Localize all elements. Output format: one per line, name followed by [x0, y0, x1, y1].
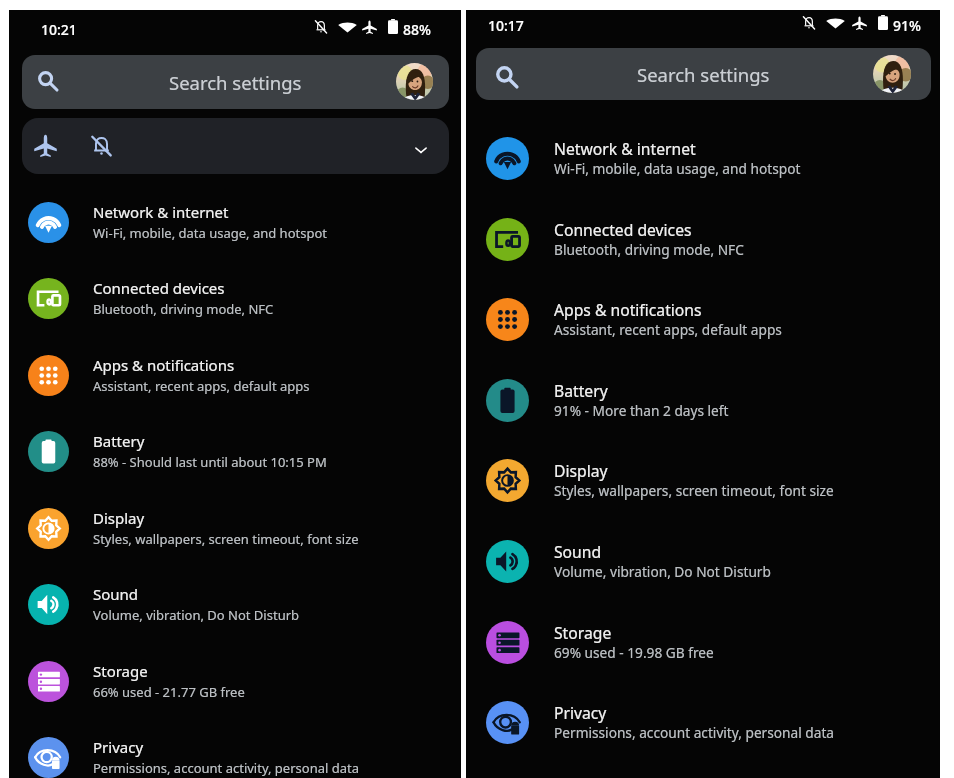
staticText: Bluetooth, driving mode, NFC: [93, 300, 274, 318]
staticText: Assistant, recent apps, default apps: [554, 320, 782, 339]
button[interactable]: Battery: [9, 413, 461, 490]
button[interactable]: Apps & notifications: [9, 337, 461, 414]
staticText: Search settings: [169, 70, 302, 95]
button[interactable]: Connected devices: [466, 199, 940, 280]
staticText: Permissions, account activity, personal …: [93, 759, 359, 777]
button[interactable]: Storage: [9, 643, 461, 720]
staticText: Display: [554, 460, 608, 481]
staticText: Privacy: [554, 702, 607, 723]
button[interactable]: Battery: [466, 360, 940, 441]
staticText: Storage: [554, 622, 612, 643]
staticText: 91% - More than 2 days left: [554, 401, 729, 420]
staticText: Bluetooth, driving mode, NFC: [554, 240, 744, 259]
other: Search: [38, 71, 58, 91]
button[interactable]: Search: [476, 48, 931, 100]
button[interactable]: Display: [466, 440, 940, 521]
button[interactable]: Apps & notifications: [466, 279, 940, 360]
staticText: Sound: [554, 541, 602, 562]
staticText: Volume, vibration, Do Not Disturb: [554, 562, 771, 581]
button[interactable]: Privacy: [9, 719, 461, 778]
other: Airplane mode: [34, 134, 57, 157]
staticText: 88%: [403, 20, 431, 39]
staticText: Wi-Fi, mobile, data usage, and hotspot: [93, 224, 327, 242]
button[interactable]: Airplane mode: [22, 118, 449, 174]
staticText: 69% used - 19.98 GB free: [554, 643, 714, 662]
staticText: Network & internet: [93, 202, 229, 222]
staticText: Search settings: [637, 62, 770, 87]
button[interactable]: Display: [9, 490, 461, 567]
staticText: Wi-Fi, mobile, data usage, and hotspot: [554, 159, 801, 178]
staticText: Battery: [93, 431, 145, 451]
staticText: Display: [93, 508, 145, 528]
staticText: Battery: [554, 380, 608, 401]
button[interactable]: Network & internet: [466, 118, 940, 199]
staticText: 10:17: [488, 16, 524, 35]
staticText: Privacy: [93, 737, 144, 757]
staticText: 66% used - 21.77 GB free: [93, 683, 245, 701]
other: Mute notifications: [90, 134, 113, 157]
staticText: Connected devices: [554, 219, 692, 240]
staticText: Connected devices: [93, 278, 225, 298]
staticText: Apps & notifications: [554, 299, 702, 320]
staticText: Styles, wallpapers, screen timeout, font…: [93, 530, 359, 548]
other: Search: [496, 66, 518, 88]
staticText: Sound: [93, 584, 139, 604]
other: Expand: [413, 142, 429, 158]
staticText: 91%: [893, 16, 921, 35]
staticText: Volume, vibration, Do Not Disturb: [93, 606, 300, 624]
staticText: Apps & notifications: [93, 355, 235, 375]
staticText: Assistant, recent apps, default apps: [93, 377, 310, 395]
staticText: Permissions, account activity, personal …: [554, 723, 835, 742]
button[interactable]: Sound: [466, 521, 940, 602]
button[interactable]: Sound: [9, 566, 461, 643]
staticText: Network & internet: [554, 138, 696, 159]
button[interactable]: Search: [22, 55, 449, 109]
button[interactable]: Privacy: [466, 682, 940, 763]
staticText: Storage: [93, 661, 148, 681]
button[interactable]: Connected devices: [9, 260, 461, 337]
button[interactable]: Storage: [466, 602, 940, 683]
staticText: Styles, wallpapers, screen timeout, font…: [554, 481, 834, 500]
staticText: 88% - Should last until about 10:15 PM: [93, 453, 327, 471]
staticText: 10:21: [41, 20, 77, 39]
button[interactable]: Network & internet: [9, 184, 461, 261]
